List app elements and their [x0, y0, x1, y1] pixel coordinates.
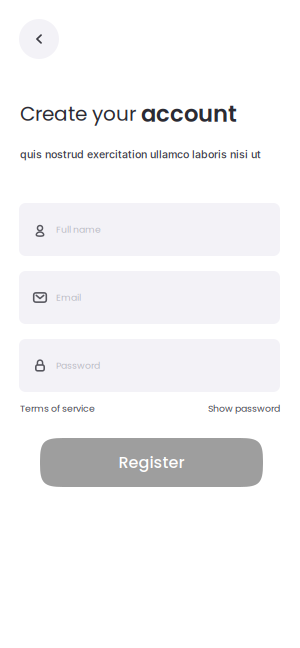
staticText: Full name: [56, 223, 101, 236]
button[interactable]: Back: [19, 19, 59, 59]
staticText: Register: [118, 451, 184, 474]
staticText: Password: [56, 359, 100, 372]
staticText: Create your: [20, 100, 141, 128]
staticText: account: [141, 98, 237, 130]
button[interactable]: Show password: [208, 402, 280, 415]
button[interactable]: Register: [40, 438, 263, 487]
staticText: Show password: [208, 402, 280, 415]
button[interactable]: Terms of service: [20, 402, 95, 415]
button[interactable]: Password: [19, 339, 280, 392]
staticText: quis nostrud exercitation ullamco labori…: [20, 148, 261, 161]
button[interactable]: Email: [19, 271, 280, 324]
staticText: Email: [56, 291, 81, 304]
staticText: Terms of service: [20, 402, 95, 415]
button[interactable]: Full name: [19, 203, 280, 256]
